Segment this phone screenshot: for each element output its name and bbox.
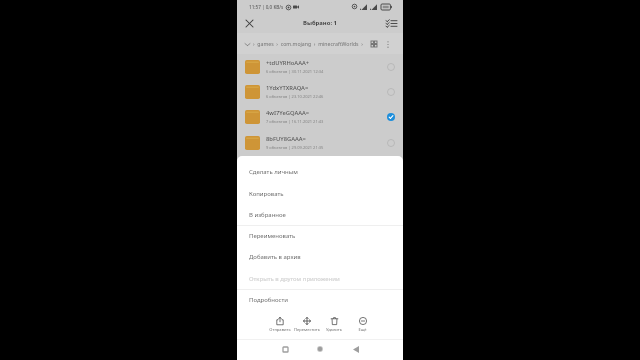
button[interactable]: Подробности	[237, 289, 403, 310]
button[interactable]: Вид сетки	[368, 38, 380, 50]
button[interactable]: Назад	[348, 341, 364, 357]
staticText: 1YdxYTXRAQA=	[266, 84, 309, 92]
button[interactable]: Недавние	[277, 341, 293, 357]
button[interactable]: Отправить	[266, 317, 294, 337]
staticText: 4wI7YeGQAAA=	[266, 109, 310, 117]
staticText: › games › com.mojang › minecraftWorlds ›	[253, 40, 363, 47]
button[interactable]: Открыть в другом приложении	[237, 268, 403, 289]
staticText: 6 объектов | 23.10.2021 22:46	[266, 94, 324, 99]
button[interactable]: В избранное	[237, 204, 403, 225]
staticText: Ещё	[358, 327, 367, 333]
button[interactable]: Выбрать	[384, 85, 397, 98]
staticText: 6 объектов | 30.11.2021 12:34	[266, 69, 324, 74]
button[interactable]: Выбрать	[384, 60, 397, 73]
staticText: 11:57 | 0,0 KB/s	[249, 4, 284, 10]
button[interactable]: Свернуть	[241, 38, 253, 50]
button[interactable]: Добавить в архив	[237, 246, 403, 267]
button[interactable]: Переместить	[293, 317, 321, 337]
button[interactable]: Выбрать	[384, 136, 397, 149]
button[interactable]: Главный экран	[312, 341, 328, 357]
button[interactable]: Удалить	[320, 317, 348, 337]
button[interactable]: Переименовать	[237, 225, 403, 246]
button[interactable]: 4wI7YeGQAAA=	[237, 104, 403, 129]
button[interactable]: 8bFUY8GAAA=	[237, 130, 403, 155]
button[interactable]: Закрыть	[241, 15, 257, 31]
button[interactable]: Ещё	[382, 38, 394, 50]
staticText: Добавить в архив	[249, 253, 301, 261]
staticText: В избранное	[249, 211, 286, 219]
staticText: Копировать	[249, 190, 284, 198]
button[interactable]: Ещё	[348, 317, 376, 337]
button[interactable]: Копировать	[237, 183, 403, 204]
button[interactable]: +tdUYRHoAAA+	[237, 54, 403, 79]
staticText: Открыть в другом приложении	[249, 275, 340, 283]
staticText: Сделать личным	[249, 168, 298, 176]
staticText: Переместить	[294, 327, 320, 333]
staticText: Выбрано: 1	[303, 19, 337, 27]
staticText: Переименовать	[249, 232, 296, 240]
staticText: 9 объектов | 29.09.2021 21:35	[266, 145, 324, 150]
staticText: 7 объектов | 16.11.2021 21:43	[266, 119, 324, 124]
staticText: Отправить	[269, 327, 291, 333]
button[interactable]: Сделать личным	[237, 161, 403, 182]
staticText: Подробности	[249, 296, 289, 304]
staticText: +tdUYRHoAAA+	[266, 59, 310, 67]
button[interactable]: Выбрать все	[383, 15, 399, 31]
staticText: 8bFUY8GAAA=	[266, 135, 306, 143]
button[interactable]: Выбрать	[384, 110, 397, 123]
button[interactable]: 1YdxYTXRAQA=	[237, 79, 403, 104]
staticText: Удалить	[326, 327, 342, 333]
